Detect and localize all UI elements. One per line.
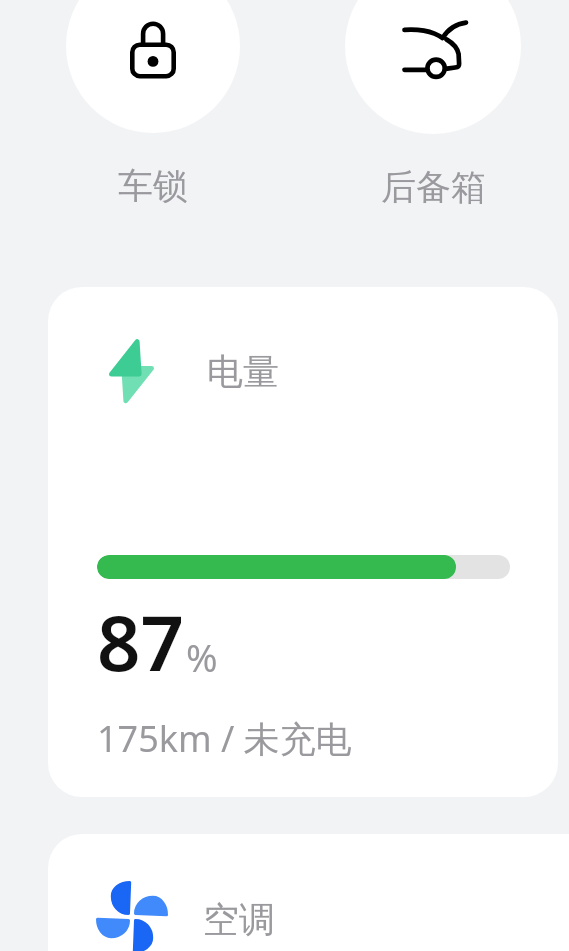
button[interactable]: Trunk — [345, 0, 521, 134]
button[interactable]: 电量 — [48, 287, 558, 797]
staticText: 车锁 — [118, 164, 188, 208]
button[interactable]: 空调 — [48, 834, 569, 951]
staticText: 87 — [97, 590, 184, 694]
button[interactable]: Car lock — [66, 0, 240, 133]
staticText: 175km / 未充电 — [97, 714, 352, 763]
staticText: 空调 — [203, 897, 275, 942]
staticText: % — [186, 631, 218, 683]
staticText: 后备箱 — [381, 165, 486, 209]
staticText: 电量 — [207, 349, 279, 394]
